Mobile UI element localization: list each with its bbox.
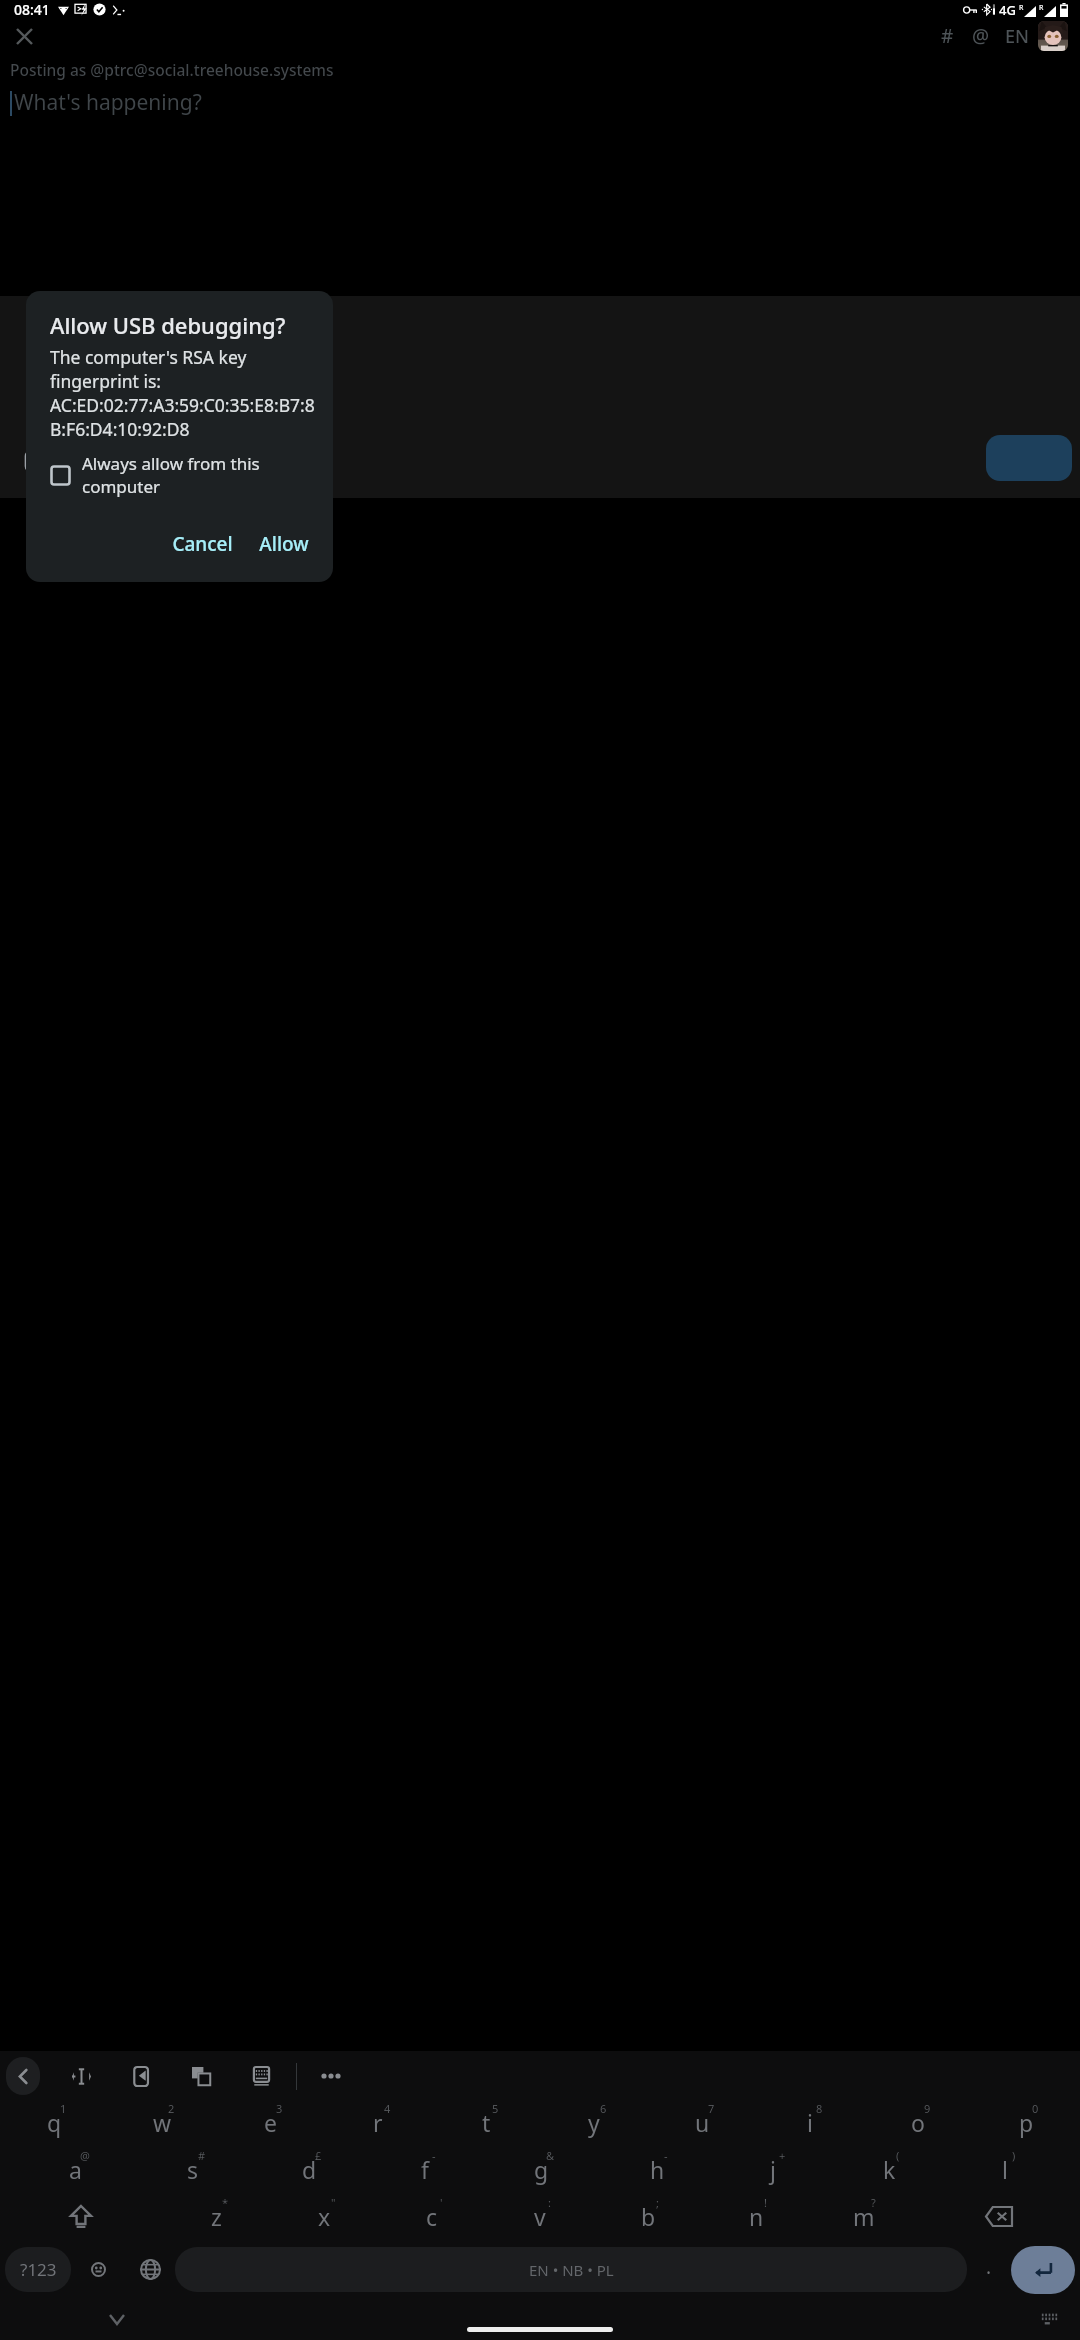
staticText: ! <box>764 2195 767 2210</box>
staticText: 4G <box>999 1 1016 19</box>
button[interactable]: Shift <box>0 2195 162 2242</box>
staticText: EN • NB • PL <box>529 2260 614 2280</box>
staticText: Posting as @ptrc@social.treehouse.system… <box>10 59 334 80</box>
staticText: # <box>198 2148 206 2163</box>
button[interactable]: Always allow from this computer <box>50 452 333 498</box>
button[interactable]: Handwriting <box>122 2057 160 2095</box>
button[interactable]: Emoji <box>71 2242 125 2297</box>
button[interactable]: q <box>0 2101 108 2148</box>
staticText: ?123 <box>20 2258 57 2281</box>
button[interactable]: Enter <box>1011 2246 1075 2294</box>
button[interactable]: b <box>594 2195 702 2242</box>
staticText: u <box>695 2107 710 2138</box>
staticText: # <box>941 23 954 49</box>
staticText: 1 <box>60 2101 67 2116</box>
button[interactable]: w <box>108 2101 216 2148</box>
button[interactable]: l <box>947 2148 1063 2195</box>
staticText: : <box>548 2195 551 2210</box>
staticText: EN <box>1005 24 1029 49</box>
button[interactable]: r <box>324 2101 432 2148</box>
staticText: 3 <box>276 2101 283 2116</box>
button[interactable]: Cancel <box>162 524 243 564</box>
button[interactable]: k <box>831 2148 947 2195</box>
button[interactable]: # <box>930 19 964 53</box>
button[interactable]: u <box>648 2101 756 2148</box>
other: Attach media <box>20 449 46 475</box>
button[interactable]: h <box>599 2148 715 2195</box>
button[interactable]: . <box>967 2242 1011 2297</box>
button[interactable]: Translate <box>182 2057 220 2095</box>
staticText: 9 <box>924 2101 931 2116</box>
button[interactable]: @ <box>964 19 998 53</box>
staticText: g <box>534 2154 549 2185</box>
button[interactable]: t <box>432 2101 540 2148</box>
staticText: 2 <box>168 2101 175 2116</box>
staticText: c <box>426 2201 438 2232</box>
staticText: z <box>211 2201 222 2232</box>
staticText: l <box>1002 2154 1008 2185</box>
button[interactable]: Back <box>6 2057 40 2095</box>
staticText: 0 <box>1032 2101 1039 2116</box>
staticText: n <box>749 2201 764 2232</box>
staticText: r <box>373 2107 383 2138</box>
button[interactable]: Close <box>8 20 40 52</box>
staticText: b <box>641 2201 656 2232</box>
button[interactable]: y <box>540 2101 648 2148</box>
staticText: + <box>779 2148 786 2163</box>
button[interactable]: s <box>134 2148 251 2195</box>
staticText: d <box>302 2154 317 2185</box>
button[interactable]: Change language <box>125 2242 175 2297</box>
button[interactable]: x <box>270 2195 378 2242</box>
staticText: v <box>534 2201 546 2232</box>
button[interactable]: v <box>486 2195 594 2242</box>
button[interactable]: c <box>378 2195 486 2242</box>
button[interactable]: EN <box>998 19 1036 53</box>
staticText: h <box>650 2154 665 2185</box>
button[interactable]: e <box>216 2101 324 2148</box>
staticText: p <box>1019 2107 1034 2138</box>
staticText: ; <box>656 2195 659 2210</box>
staticText: k <box>883 2154 896 2185</box>
staticText: e <box>264 2107 277 2138</box>
staticText: q <box>47 2107 62 2138</box>
button[interactable]: m <box>810 2195 918 2242</box>
staticText: £ <box>315 2148 322 2163</box>
button[interactable]: d <box>251 2148 367 2195</box>
button[interactable]: Switch keyboard <box>1032 2302 1066 2336</box>
staticText: x <box>318 2201 331 2232</box>
button[interactable]: Text cursor <box>62 2057 100 2095</box>
staticText: Always allow from this computer <box>82 452 333 498</box>
button[interactable]: Hide keyboard <box>100 2302 134 2336</box>
staticText: o <box>911 2107 925 2138</box>
button[interactable]: o <box>864 2101 972 2148</box>
button[interactable]: a <box>17 2148 134 2195</box>
button[interactable]: j <box>715 2148 831 2195</box>
staticText: s <box>187 2154 199 2185</box>
button[interactable]: ?123 <box>5 2247 71 2292</box>
staticText: ( <box>896 2148 900 2163</box>
staticText: . <box>986 2254 992 2280</box>
button[interactable]: Backspace <box>918 2195 1080 2242</box>
button[interactable]: p <box>972 2101 1080 2148</box>
button[interactable]: Allow <box>249 524 319 564</box>
staticText: ' <box>440 2195 443 2210</box>
button[interactable]: z <box>162 2195 270 2242</box>
staticText: & <box>546 2148 555 2163</box>
button[interactable]: EN • NB • PL <box>175 2247 967 2292</box>
button[interactable]: More options <box>313 2058 349 2094</box>
staticText: i <box>807 2107 813 2138</box>
button[interactable]: g <box>483 2148 599 2195</box>
button[interactable] <box>986 435 1072 481</box>
button[interactable]: i <box>756 2101 864 2148</box>
staticText: ? <box>871 2195 876 2210</box>
staticText: f <box>421 2154 429 2185</box>
staticText: 8 <box>816 2101 823 2116</box>
staticText: y <box>588 2107 600 2138</box>
button[interactable]: n <box>702 2195 810 2242</box>
button[interactable]: Keyboard settings <box>242 2057 280 2095</box>
staticText: t <box>482 2107 491 2138</box>
button[interactable]: f <box>367 2148 483 2195</box>
button[interactable]: Account avatar <box>1038 21 1068 51</box>
staticText: 7 <box>708 2101 715 2116</box>
staticText: Allow USB debugging? <box>50 310 286 340</box>
